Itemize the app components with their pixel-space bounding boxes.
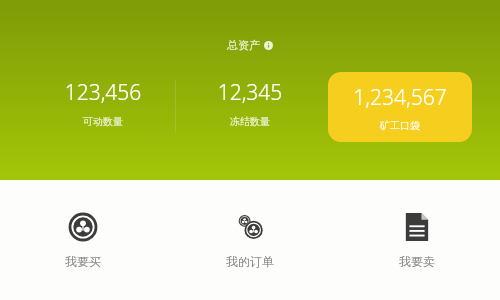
staticText: 我要卖 xyxy=(399,254,435,269)
staticText: 1,234,567 xyxy=(353,83,447,112)
button[interactable]: 我要买 xyxy=(0,180,166,300)
staticText: 总资产 xyxy=(227,38,260,52)
staticText: 12,345 xyxy=(185,78,315,107)
button[interactable]: 我的订单 xyxy=(166,180,333,300)
button[interactable]: 我要卖 xyxy=(333,180,500,300)
staticText: 矿工口袋 xyxy=(380,119,420,132)
button[interactable]: 总资产 xyxy=(227,38,273,52)
staticText: 我要买 xyxy=(65,254,101,269)
staticText: 冻结数量 xyxy=(185,115,315,128)
button[interactable]: 1,234,567 xyxy=(328,72,472,142)
staticText: 可动数量 xyxy=(38,115,168,128)
button[interactable]: 12,345 xyxy=(185,78,315,128)
other: Info xyxy=(264,41,273,50)
staticText: 我的订单 xyxy=(226,254,274,269)
button[interactable]: 123,456 xyxy=(38,78,168,128)
staticText: 123,456 xyxy=(38,78,168,107)
